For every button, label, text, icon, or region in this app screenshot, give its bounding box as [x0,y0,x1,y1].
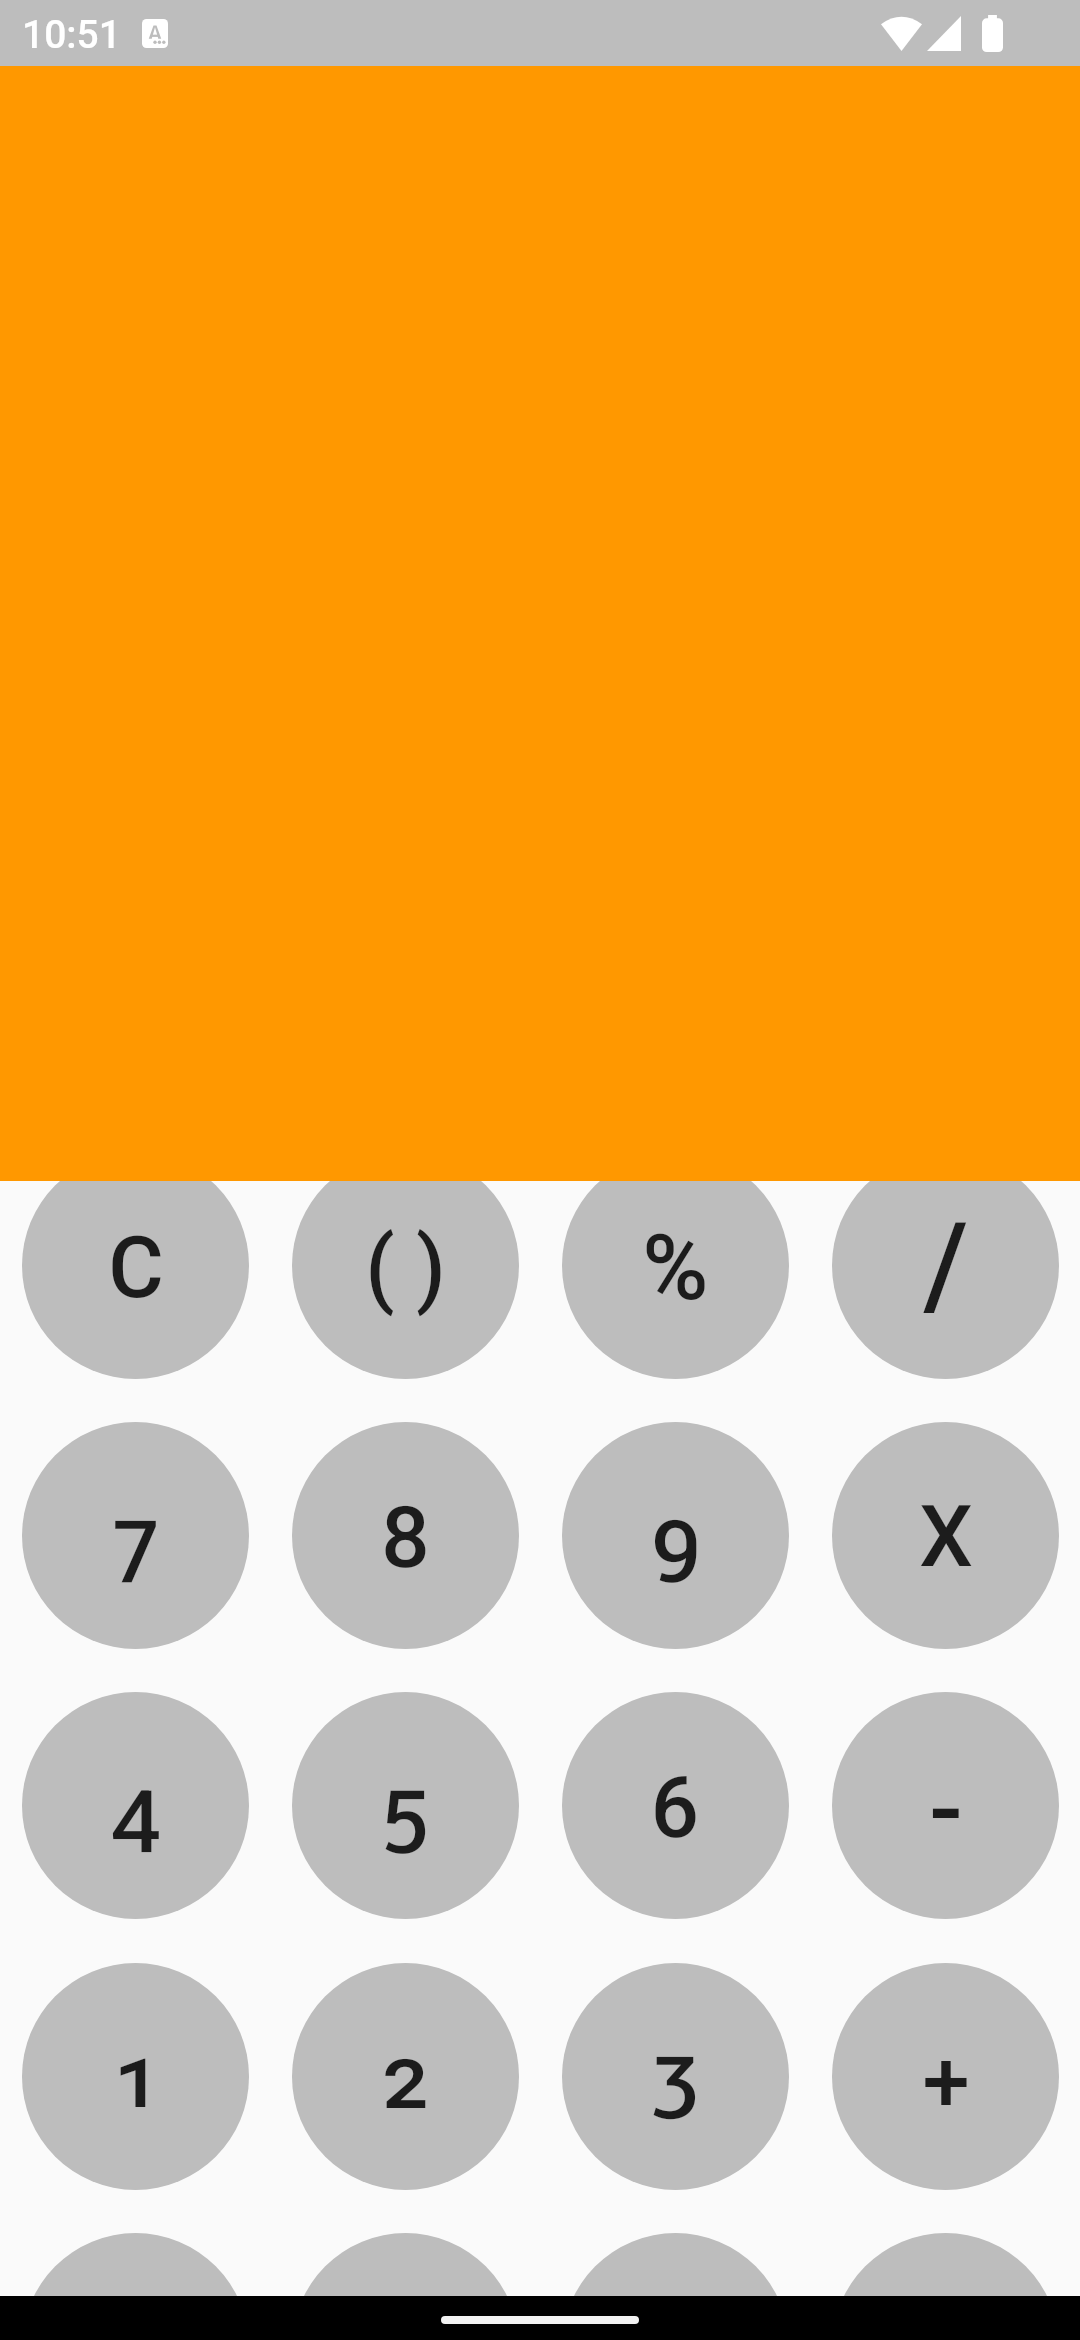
staticText: 2 [381,2029,430,2129]
staticText: ( ) [365,1218,446,1318]
button[interactable]: 6 [562,1692,789,1919]
button[interactable]: 1 [22,1963,249,2190]
button[interactable]: Equals [832,2233,1059,2340]
button[interactable]: . [562,2233,789,2340]
other: Wi-Fi [881,16,922,51]
button[interactable]: C [22,1152,249,1379]
staticText: % [642,1216,709,1321]
button[interactable]: Divide [832,1152,1059,1379]
staticText: C [108,1218,164,1318]
button[interactable]: 2 [292,1963,519,2190]
staticText: 1 [111,2028,160,2128]
other: Signal [927,16,961,51]
button[interactable]: 8 [292,1422,519,1649]
button[interactable]: Plus [832,1963,1059,2190]
button[interactable]: 4 [22,1692,249,1919]
button[interactable]: 9 [562,1422,789,1649]
staticText: 3 [651,2026,700,2126]
button[interactable]: 5 [292,1692,519,1919]
staticText: 5 [381,1760,430,1860]
staticText: + [922,2032,970,2132]
button[interactable]: Parentheses [292,1152,519,1379]
button[interactable]: 3 [562,1963,789,2190]
staticText: 10:51 [22,12,121,58]
button[interactable]: 0 [292,2233,519,2340]
button[interactable]: AC [22,2233,249,2340]
button[interactable]: Minus [832,1692,1059,1919]
staticText: X [919,1487,973,1587]
staticText: - [929,1751,963,1868]
staticText: 7 [111,1490,160,1590]
button[interactable]: % [562,1152,789,1379]
staticText: 9 [651,1490,700,1590]
button[interactable]: Multiply [832,1422,1059,1649]
other: Language [142,19,168,48]
staticText: 4 [111,1760,160,1860]
button[interactable]: 7 [22,1422,249,1649]
staticText: 6 [651,1758,700,1858]
staticText: 8 [381,1488,430,1588]
other: Battery [982,15,1003,52]
staticText: / [923,1198,969,1334]
